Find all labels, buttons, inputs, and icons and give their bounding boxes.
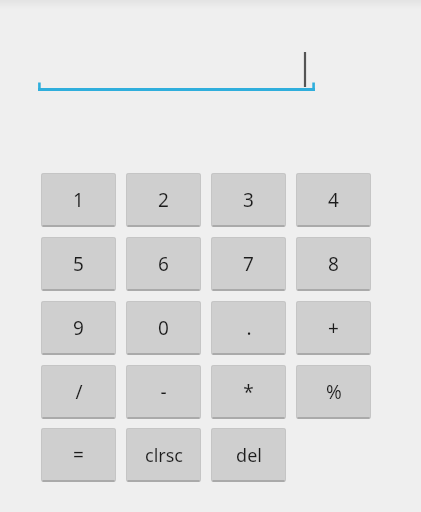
staticText: . — [246, 315, 252, 341]
staticText: 3 — [243, 187, 254, 213]
staticText: % — [326, 379, 342, 405]
button[interactable]: 9 — [41, 301, 116, 355]
staticText: * — [243, 379, 254, 405]
staticText: 5 — [73, 251, 84, 277]
staticText: / — [75, 379, 83, 405]
button[interactable]: 6 — [126, 237, 201, 291]
staticText: 4 — [328, 187, 339, 213]
button[interactable]: 2 — [126, 173, 201, 227]
button[interactable]: 1 — [41, 173, 116, 227]
button[interactable]: del — [211, 428, 286, 482]
staticText: 2 — [158, 187, 169, 213]
button[interactable]: * — [211, 365, 286, 419]
staticText: = — [73, 442, 84, 468]
staticText: 0 — [158, 315, 169, 341]
button[interactable]: 8 — [296, 237, 371, 291]
staticText: + — [328, 315, 339, 341]
staticText: clrsc — [145, 443, 183, 468]
button[interactable]: 5 — [41, 237, 116, 291]
button[interactable]: % — [296, 365, 371, 419]
staticText: 6 — [158, 251, 169, 277]
button[interactable]: = — [41, 428, 116, 482]
staticText: del — [236, 443, 262, 468]
staticText: 1 — [73, 187, 84, 213]
button[interactable]: 0 — [126, 301, 201, 355]
button[interactable]: clrsc — [126, 428, 201, 482]
button[interactable]: / — [41, 365, 116, 419]
button[interactable]: 4 — [296, 173, 371, 227]
button[interactable]: . — [211, 301, 286, 355]
button[interactable]: 7 — [211, 237, 286, 291]
button[interactable]: 3 — [211, 173, 286, 227]
staticText: 9 — [73, 315, 84, 341]
button[interactable]: - — [126, 365, 201, 419]
button[interactable]: + — [296, 301, 371, 355]
staticText: - — [160, 379, 167, 405]
staticText: 8 — [328, 251, 339, 277]
staticText: 7 — [243, 251, 254, 277]
